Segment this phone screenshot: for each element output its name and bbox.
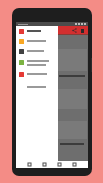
button[interactable] bbox=[16, 36, 58, 46]
button[interactable]: Back bbox=[26, 161, 32, 168]
button[interactable]: Recents bbox=[56, 161, 62, 168]
button[interactable] bbox=[16, 46, 58, 56]
button[interactable]: Home bbox=[41, 161, 47, 168]
button[interactable] bbox=[16, 69, 58, 79]
button[interactable] bbox=[16, 56, 58, 69]
button[interactable]: More options bbox=[79, 27, 86, 34]
button[interactable]: Menu bbox=[71, 161, 77, 168]
button[interactable] bbox=[16, 26, 58, 36]
button[interactable] bbox=[16, 82, 58, 91]
button[interactable]: Share bbox=[71, 27, 78, 34]
